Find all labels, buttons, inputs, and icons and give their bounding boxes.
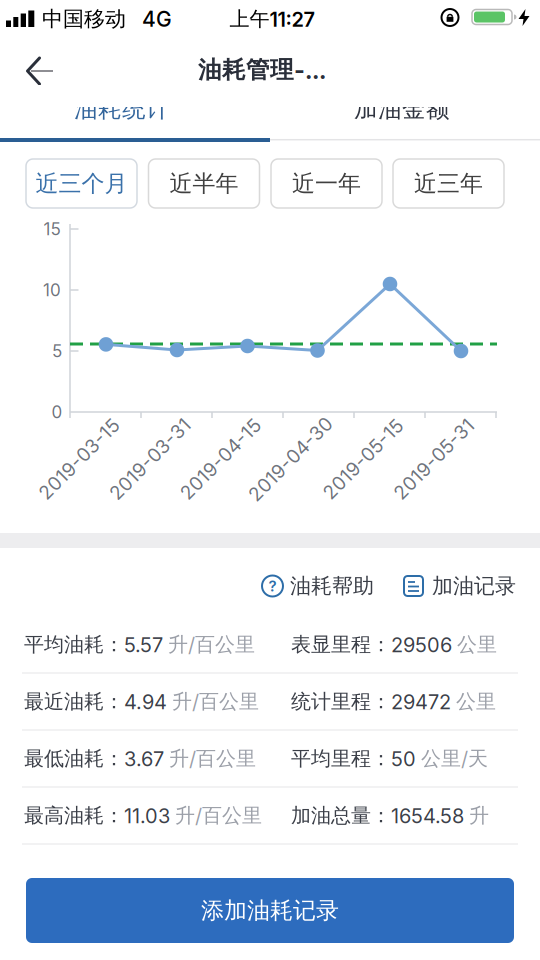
staticText: 近半年 <box>169 169 238 198</box>
staticText: 近三年 <box>414 169 483 198</box>
staticText: 最低油耗：3.67 <box>24 746 164 771</box>
button[interactable]: Back <box>18 49 62 93</box>
staticText: 2019-04-15 <box>168 447 273 470</box>
staticText: 2019-04-30 <box>235 447 345 470</box>
staticText: 公里 <box>457 632 497 657</box>
staticText: 升/百公里 <box>172 689 259 714</box>
staticText: 最近油耗：4.94 <box>24 689 167 714</box>
button[interactable]: 油耗统计 <box>0 89 257 129</box>
button[interactable]: 近一年 <box>271 159 382 208</box>
staticText: 油耗管理-... <box>198 55 326 85</box>
staticText: 升 <box>469 803 489 828</box>
staticText: 加油金额 <box>354 94 450 124</box>
button[interactable]: 加油记录 <box>404 573 516 599</box>
staticText: 表显里程：29506 <box>291 632 452 657</box>
staticText: 加油总量：1654.58 <box>291 803 464 828</box>
staticText: 加油记录 <box>432 573 516 599</box>
staticText: 升/百公里 <box>169 746 256 771</box>
staticText: 2019-05-15 <box>311 447 415 470</box>
staticText: 最高油耗：11.03 <box>24 803 170 828</box>
button[interactable]: ? <box>262 573 374 599</box>
staticText: 升/百公里 <box>175 803 262 828</box>
staticText: 2019-05-31 <box>381 447 486 470</box>
staticText: 中国移动 <box>42 6 126 32</box>
staticText: 统计里程：29472 <box>291 689 451 714</box>
staticText: 平均油耗：5.57 <box>24 632 163 657</box>
staticText: 2019-03-31 <box>97 447 203 470</box>
staticText: 平均里程：50 <box>291 746 416 771</box>
staticText: 上午11:27 <box>229 6 314 32</box>
staticText: 5 <box>52 341 62 361</box>
staticText: 0 <box>51 402 62 422</box>
staticText: 油耗帮助 <box>290 573 374 599</box>
button[interactable]: 加油金额 <box>267 89 537 129</box>
staticText: 4G <box>142 6 172 32</box>
button[interactable]: 近三个月 <box>26 159 137 208</box>
staticText: 近三个月 <box>35 169 127 198</box>
staticText: ? <box>268 577 276 595</box>
staticText: 10 <box>43 280 61 300</box>
staticText: 公里/天 <box>421 746 488 771</box>
staticText: 2019-03-15 <box>26 447 131 470</box>
staticText: 15 <box>43 219 60 239</box>
button[interactable]: 添加油耗记录 <box>26 878 514 943</box>
staticText: 近一年 <box>292 169 361 198</box>
staticText: 油耗统计 <box>74 94 170 124</box>
staticText: 添加油耗记录 <box>201 896 339 925</box>
button[interactable]: 近半年 <box>148 159 259 208</box>
staticText: 公里 <box>456 689 496 714</box>
staticText: 升/百公里 <box>168 632 255 657</box>
button[interactable]: 近三年 <box>393 159 504 208</box>
